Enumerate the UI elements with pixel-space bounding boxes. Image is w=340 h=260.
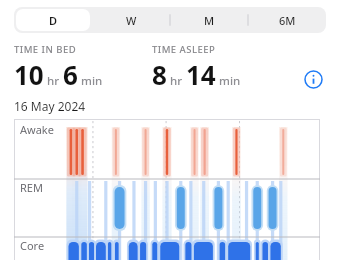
staticText: 14 xyxy=(186,57,216,92)
staticText: min xyxy=(81,73,103,89)
button[interactable]: 6M xyxy=(250,9,324,31)
staticText: 8 xyxy=(152,57,167,92)
staticText: W xyxy=(126,13,137,28)
staticText: 6 xyxy=(63,57,78,92)
staticText: M xyxy=(204,13,215,28)
staticText: hr xyxy=(47,73,60,89)
staticText: hr xyxy=(170,73,183,89)
button[interactable]: D xyxy=(16,9,90,31)
staticText: min xyxy=(219,73,241,89)
button[interactable]: M xyxy=(172,9,246,31)
staticText: REM xyxy=(20,180,43,195)
staticText: 10 xyxy=(14,57,44,92)
button[interactable]: Sleep stages information xyxy=(300,66,326,92)
staticText: TIME IN BED xyxy=(14,43,77,56)
staticText: Core xyxy=(20,238,45,253)
staticText: D xyxy=(49,13,58,28)
staticText: Awake xyxy=(20,122,54,137)
staticText: TIME ASLEEP xyxy=(152,43,216,56)
button[interactable]: W xyxy=(94,9,168,31)
staticText: 16 May 2024 xyxy=(14,98,86,114)
staticText: 6M xyxy=(279,13,296,28)
